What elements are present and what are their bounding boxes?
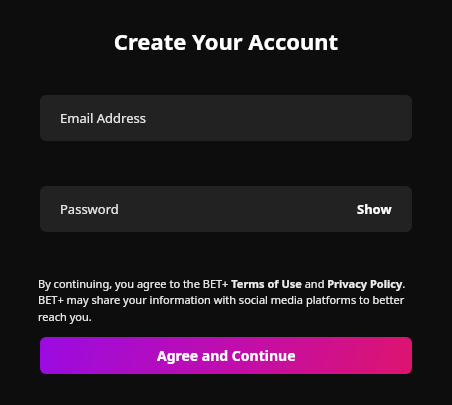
button[interactable]: Password: [40, 186, 412, 232]
staticText: By continuing, you agree to the BET+ Ter…: [38, 276, 410, 325]
staticText: Create Your Account: [40, 26, 412, 56]
button[interactable]: Email Address: [40, 95, 412, 141]
staticText: Email Address: [60, 109, 146, 127]
staticText: Show: [357, 200, 392, 218]
button[interactable]: Agree and Continue: [40, 337, 412, 374]
button[interactable]: Show: [357, 200, 392, 218]
staticText: Agree and Continue: [157, 346, 296, 365]
staticText: Password: [60, 200, 119, 218]
